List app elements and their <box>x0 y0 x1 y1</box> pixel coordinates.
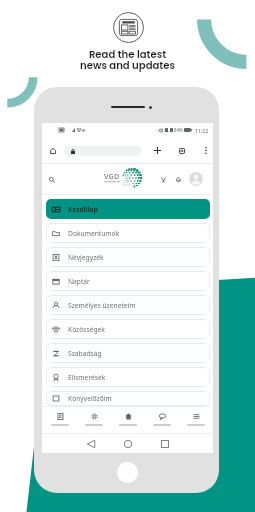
button[interactable]: Személyes üzeneteim <box>46 295 210 315</box>
button[interactable]: Home <box>48 146 58 156</box>
staticText: Naptár <box>68 277 90 286</box>
button[interactable]: Back <box>87 440 95 448</box>
button[interactable]: Kezdőlap <box>46 199 210 219</box>
staticText: Kezdőlap <box>68 205 98 214</box>
button[interactable]: Tab 5 <box>179 406 213 434</box>
button[interactable]: Elismerések <box>46 367 210 387</box>
button[interactable]: Search <box>46 174 58 186</box>
staticText: 84% <box>174 127 183 133</box>
staticText: Read the latest news and updates <box>80 47 175 73</box>
button[interactable] <box>64 146 142 156</box>
button[interactable]: Recents <box>161 440 169 448</box>
button[interactable]: Tabs <box>176 145 187 156</box>
staticText: Személyes üzeneteim <box>68 301 136 310</box>
staticText: VGD <box>104 171 120 181</box>
button[interactable]: Tab 3 <box>111 406 145 434</box>
button[interactable]: Szabadság <box>46 343 210 363</box>
staticText: 11:22 <box>195 127 209 134</box>
staticText: Közösségek <box>68 325 105 334</box>
button[interactable]: Dokumentumok <box>46 223 210 243</box>
button[interactable]: Tab 1 <box>42 406 77 434</box>
button[interactable]: Home <box>117 462 138 483</box>
button[interactable]: Névjegyzék <box>46 247 210 267</box>
staticText: Szabadság <box>68 349 102 358</box>
button[interactable]: Közösségek <box>46 319 210 339</box>
button[interactable]: Naptár <box>46 271 210 291</box>
button[interactable]: More options <box>200 145 211 156</box>
staticText: Dokumentumok <box>68 229 120 238</box>
button[interactable]: Profile <box>189 172 203 186</box>
button[interactable]: Notifications <box>173 174 184 185</box>
button[interactable]: Home <box>124 440 132 448</box>
staticText: Könyvelőzőim <box>68 394 112 403</box>
button[interactable]: Tab 4 <box>145 406 179 434</box>
button[interactable]: New tab <box>152 145 163 156</box>
button[interactable]: Tab 2 <box>77 406 111 434</box>
staticText: Névjegyzék <box>68 253 104 262</box>
staticText: Elismerések <box>68 373 106 382</box>
button[interactable]: Könyvelőzőim <box>46 391 210 406</box>
button[interactable]: Awards <box>158 174 169 185</box>
